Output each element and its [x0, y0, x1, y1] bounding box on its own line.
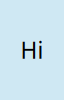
staticText: Hi [20, 35, 43, 65]
